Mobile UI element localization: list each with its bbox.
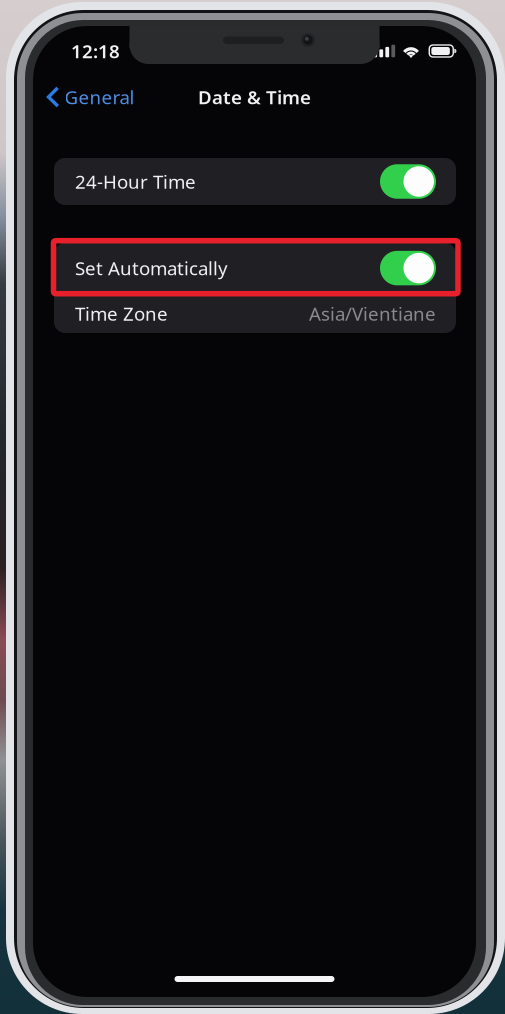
staticText: Time Zone xyxy=(75,301,168,326)
button[interactable]: General xyxy=(33,76,144,118)
staticText: Set Automatically xyxy=(75,256,228,280)
staticText: Asia/Vientiane xyxy=(309,301,436,326)
staticText: General xyxy=(64,85,134,109)
staticText: 24-Hour Time xyxy=(75,169,196,194)
staticText: 12:18 xyxy=(71,39,120,63)
button[interactable]: Time Zone xyxy=(54,294,456,333)
staticText: Date & Time xyxy=(198,85,311,109)
button[interactable]: 24-Hour Time xyxy=(54,158,456,205)
button[interactable]: Set Automatically xyxy=(54,243,456,293)
